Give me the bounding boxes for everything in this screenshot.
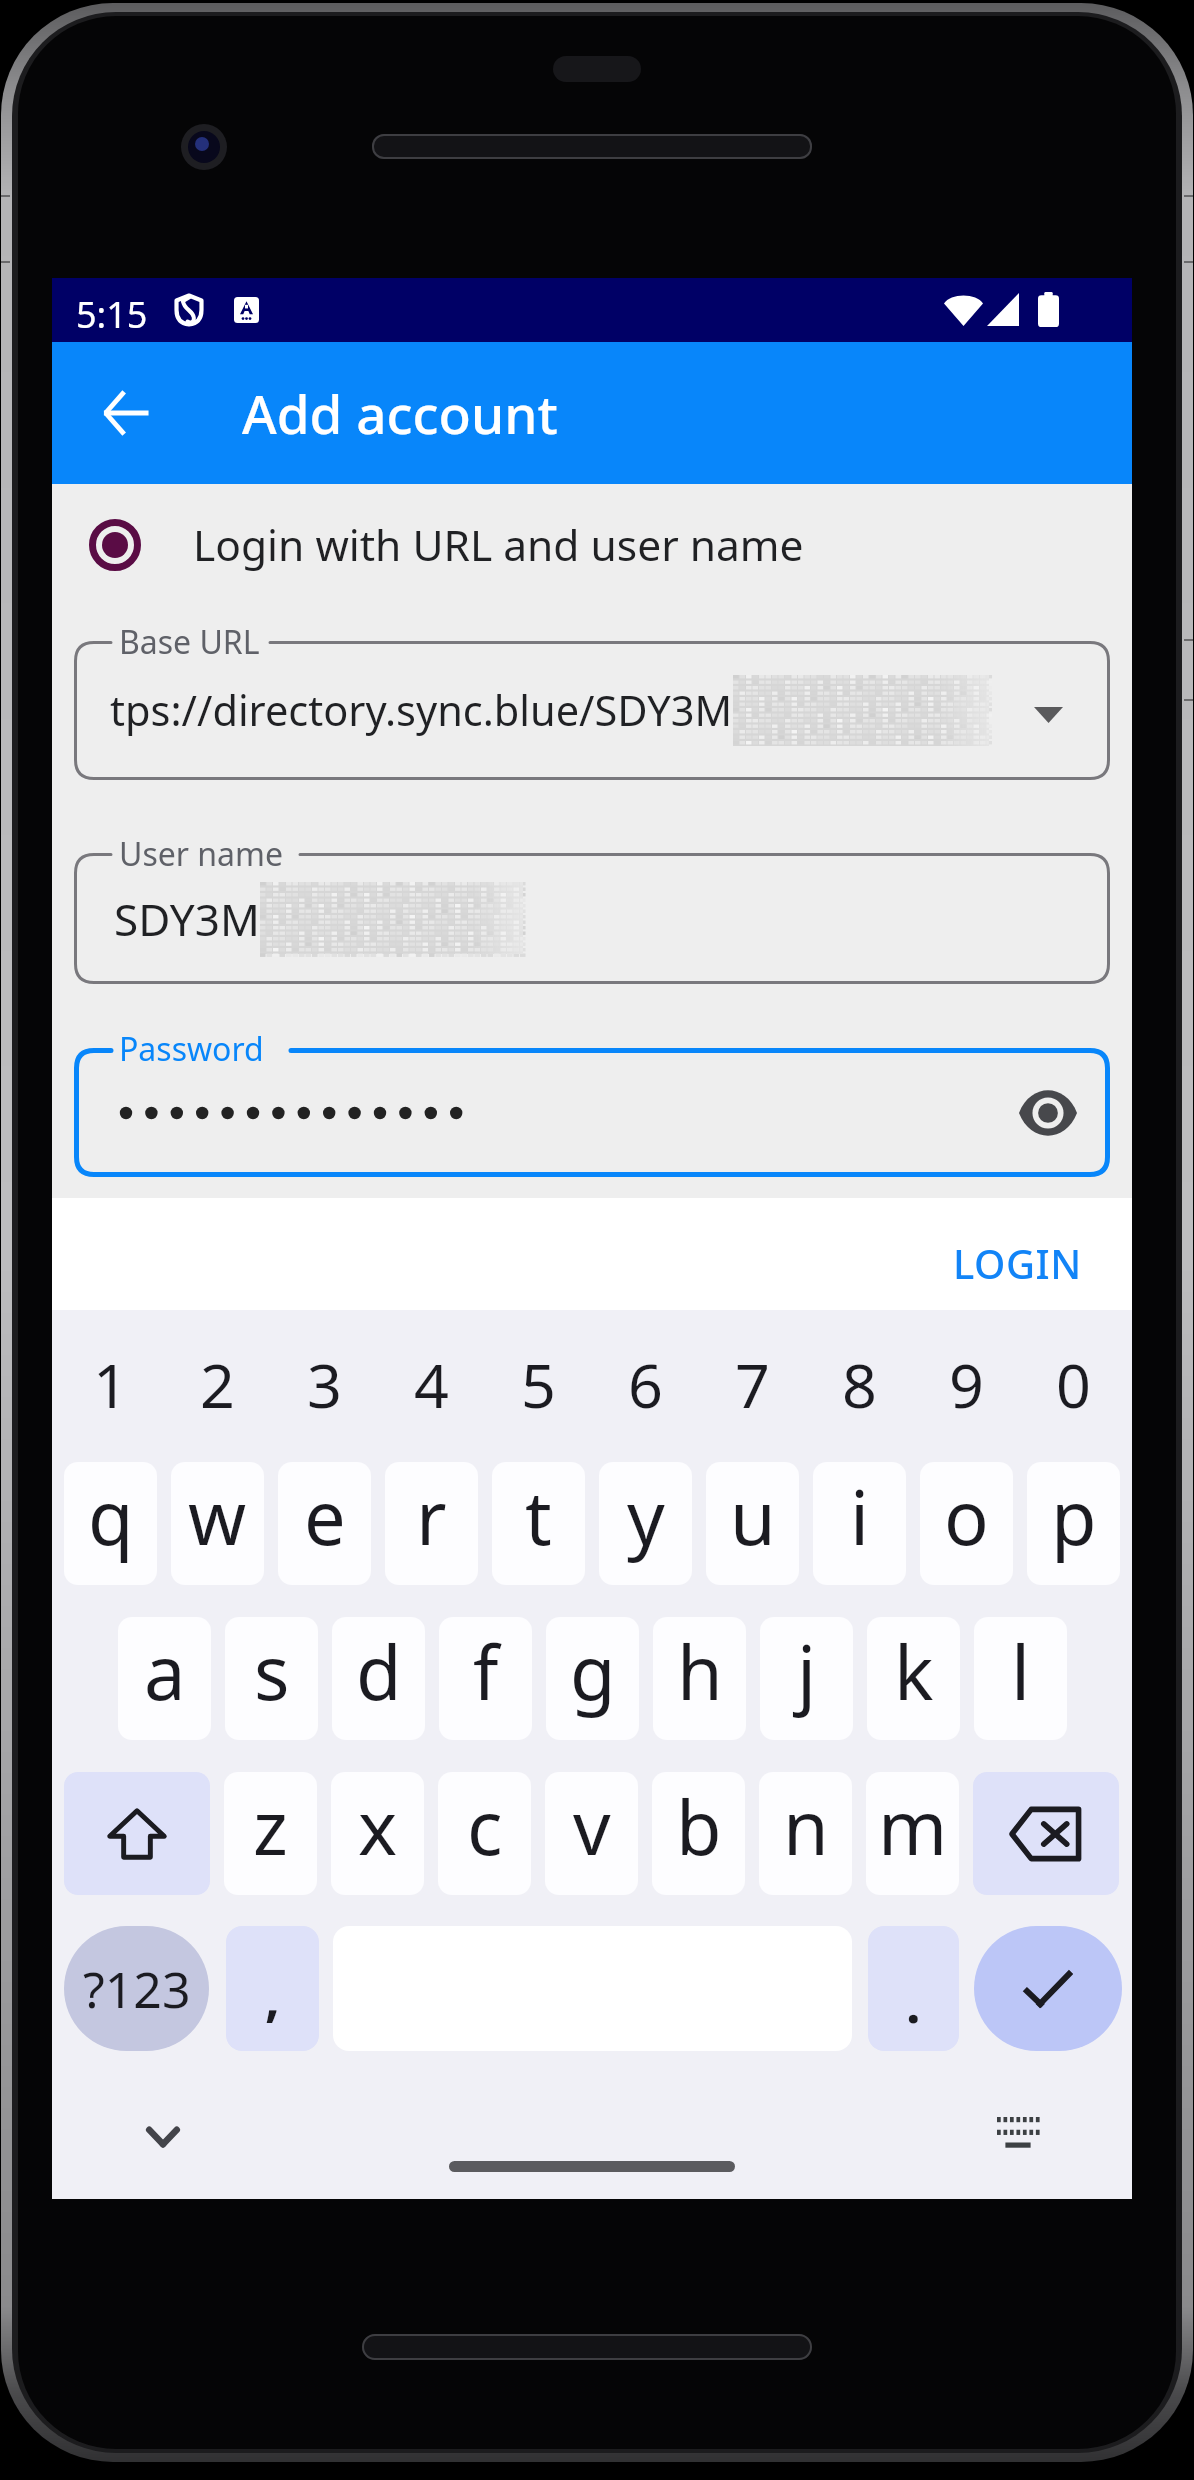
button[interactable]: z xyxy=(224,1772,317,1895)
staticText: s xyxy=(254,1621,290,1722)
staticText: 5:15 xyxy=(76,290,148,339)
button[interactable]: Login with URL and user name xyxy=(52,484,1132,606)
staticText: 5 xyxy=(521,1343,556,1426)
staticText: 6 xyxy=(628,1343,663,1426)
staticText: m xyxy=(878,1776,948,1877)
button[interactable]: g xyxy=(546,1617,639,1740)
staticText: f xyxy=(473,1621,499,1722)
staticText: 9 xyxy=(949,1343,984,1426)
staticText: g xyxy=(570,1621,616,1722)
button[interactable]: m xyxy=(866,1772,959,1895)
button[interactable]: Show password xyxy=(1006,1071,1090,1155)
staticText: Login with URL and user name xyxy=(193,516,804,574)
button[interactable]: k xyxy=(867,1617,960,1740)
button[interactable]: r xyxy=(385,1462,478,1585)
button[interactable]: Period xyxy=(868,1926,959,2051)
staticText: c xyxy=(467,1776,503,1877)
button[interactable]: u xyxy=(706,1462,799,1585)
button[interactable]: q xyxy=(64,1462,157,1585)
staticText: j xyxy=(797,1621,817,1722)
staticText: , xyxy=(265,1960,280,2031)
staticText: 0 xyxy=(1056,1343,1091,1426)
button[interactable]: ?123 xyxy=(64,1926,209,2051)
button[interactable]: l xyxy=(974,1617,1067,1740)
staticText: Add account xyxy=(242,377,558,449)
staticText: u xyxy=(730,1466,776,1567)
staticText: Password xyxy=(119,1027,264,1071)
staticText: y xyxy=(627,1466,665,1567)
button[interactable]: b xyxy=(652,1772,745,1895)
button[interactable]: d xyxy=(332,1617,425,1740)
staticText: v xyxy=(573,1776,611,1877)
staticText: t xyxy=(525,1466,552,1567)
button[interactable]: Hide keyboard xyxy=(124,2098,202,2176)
staticText: h xyxy=(677,1621,723,1722)
staticText: x xyxy=(358,1776,398,1877)
button[interactable]: n xyxy=(759,1772,852,1895)
button[interactable]: i xyxy=(813,1462,906,1585)
staticText: User name xyxy=(119,832,284,876)
button[interactable]: t xyxy=(492,1462,585,1585)
staticText: 8 xyxy=(842,1343,877,1426)
staticText: 3 xyxy=(307,1343,342,1426)
button[interactable]: j xyxy=(760,1617,853,1740)
staticText: o xyxy=(944,1466,989,1567)
button[interactable]: p xyxy=(1027,1462,1120,1585)
button[interactable]: Backspace xyxy=(973,1772,1119,1895)
button[interactable]: x xyxy=(331,1772,424,1895)
staticText: 1 xyxy=(93,1343,128,1426)
staticText: d xyxy=(356,1621,402,1722)
button[interactable]: f xyxy=(439,1617,532,1740)
button[interactable]: Navigate back xyxy=(88,375,164,451)
button[interactable]: Switch keyboard xyxy=(980,2095,1058,2173)
button[interactable]: User name xyxy=(74,853,1110,984)
button[interactable]: h xyxy=(653,1617,746,1740)
staticText: i xyxy=(850,1466,870,1567)
button[interactable]: o xyxy=(920,1462,1013,1585)
staticText: a xyxy=(144,1621,186,1722)
button[interactable]: Shift xyxy=(64,1772,210,1895)
button[interactable]: w xyxy=(171,1462,264,1585)
staticText: 4 xyxy=(414,1343,449,1426)
button[interactable]: s xyxy=(225,1617,318,1740)
staticText: z xyxy=(253,1776,288,1877)
staticText: b xyxy=(676,1776,722,1877)
staticText: ?123 xyxy=(83,1955,191,2023)
staticText: 7 xyxy=(735,1343,770,1426)
staticText: p xyxy=(1051,1466,1097,1567)
staticText: LOGIN xyxy=(953,1236,1082,1290)
button[interactable]: c xyxy=(438,1772,531,1895)
staticText: l xyxy=(1011,1621,1031,1722)
button[interactable]: y xyxy=(599,1462,692,1585)
button[interactable]: Comma xyxy=(226,1926,319,2051)
button[interactable]: Expand base URL list xyxy=(1008,675,1088,755)
button[interactable]: Base URL xyxy=(74,641,1110,780)
button[interactable]: a xyxy=(118,1617,211,1740)
staticText: e xyxy=(304,1466,346,1567)
staticText: k xyxy=(894,1621,934,1722)
staticText: tps://directory.sync.blue/SDY3M xyxy=(110,682,733,739)
button[interactable]: Enter xyxy=(974,1926,1122,2051)
button[interactable]: e xyxy=(278,1462,371,1585)
button[interactable]: Password xyxy=(74,1048,1110,1177)
button[interactable]: v xyxy=(545,1772,638,1895)
staticText: 2 xyxy=(200,1343,235,1426)
staticText: Base URL xyxy=(119,620,260,664)
staticText: w xyxy=(188,1466,247,1567)
staticText: n xyxy=(783,1776,829,1877)
staticText: SDY3M xyxy=(114,889,260,949)
staticText: . xyxy=(906,1967,921,2038)
staticText: q xyxy=(88,1466,134,1567)
button[interactable]: LOGIN xyxy=(931,1220,1104,1306)
staticText: r xyxy=(416,1466,447,1567)
